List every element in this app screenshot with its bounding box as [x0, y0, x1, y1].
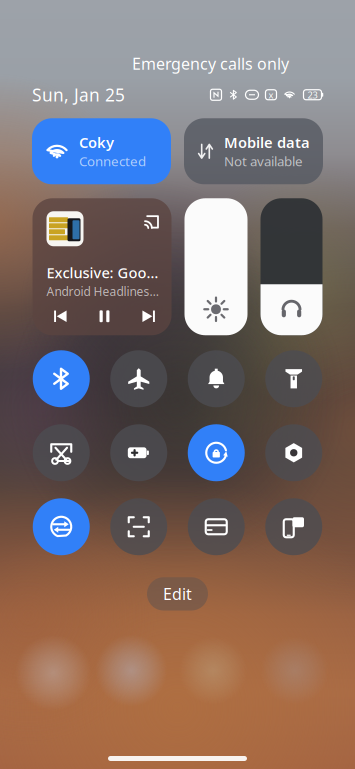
staticText: Mobile data: [224, 133, 310, 152]
button[interactable]: Cast: [142, 211, 160, 231]
button[interactable]: Flashlight: [265, 350, 322, 407]
button[interactable]: Settings: [265, 424, 322, 481]
button[interactable]: Screenshot: [33, 424, 90, 481]
staticText: Exclusive: Google…: [46, 263, 160, 282]
staticText: Android Headlines - An…: [46, 283, 160, 299]
button[interactable]: Bluetooth: [33, 350, 90, 407]
button[interactable]: Ring mode: [188, 350, 245, 407]
button[interactable]: Next: [140, 308, 156, 324]
staticText: Coky: [79, 133, 114, 152]
button[interactable]: Wallet: [188, 498, 245, 555]
staticText: Emergency calls only: [132, 53, 289, 74]
button[interactable]: Brightness: [184, 198, 247, 335]
staticText: Edit: [163, 583, 192, 604]
staticText: 23: [307, 89, 317, 101]
staticText: Not available: [224, 152, 303, 170]
staticText: x: [268, 89, 273, 101]
button[interactable]: Airplane mode: [110, 350, 167, 407]
staticText: Connected: [79, 152, 146, 170]
button[interactable]: Rotation lock: [188, 424, 245, 481]
button[interactable]: Previous: [52, 308, 68, 324]
button[interactable]: Battery saver: [110, 424, 167, 481]
button[interactable]: Volume: [260, 198, 322, 335]
button[interactable]: Scan: [110, 498, 167, 555]
button[interactable]: Coky: [32, 118, 171, 184]
button[interactable]: Sync: [33, 498, 90, 555]
button[interactable]: Mobile data: [184, 118, 323, 184]
staticText: Sun, Jan 25: [32, 83, 125, 106]
button[interactable]: Edit: [147, 577, 208, 610]
button[interactable]: Cast: [265, 498, 322, 555]
button[interactable]: Pause: [96, 308, 112, 324]
